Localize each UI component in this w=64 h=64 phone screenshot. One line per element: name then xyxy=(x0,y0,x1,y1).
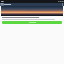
button[interactable]: More options xyxy=(61,3,64,6)
button[interactable] xyxy=(2,16,62,21)
button[interactable]: Continue xyxy=(2,21,62,24)
button[interactable]: Photo xyxy=(1,6,63,16)
button[interactable]: Navigate up xyxy=(0,3,4,6)
button[interactable]: Navigate up xyxy=(0,3,64,6)
